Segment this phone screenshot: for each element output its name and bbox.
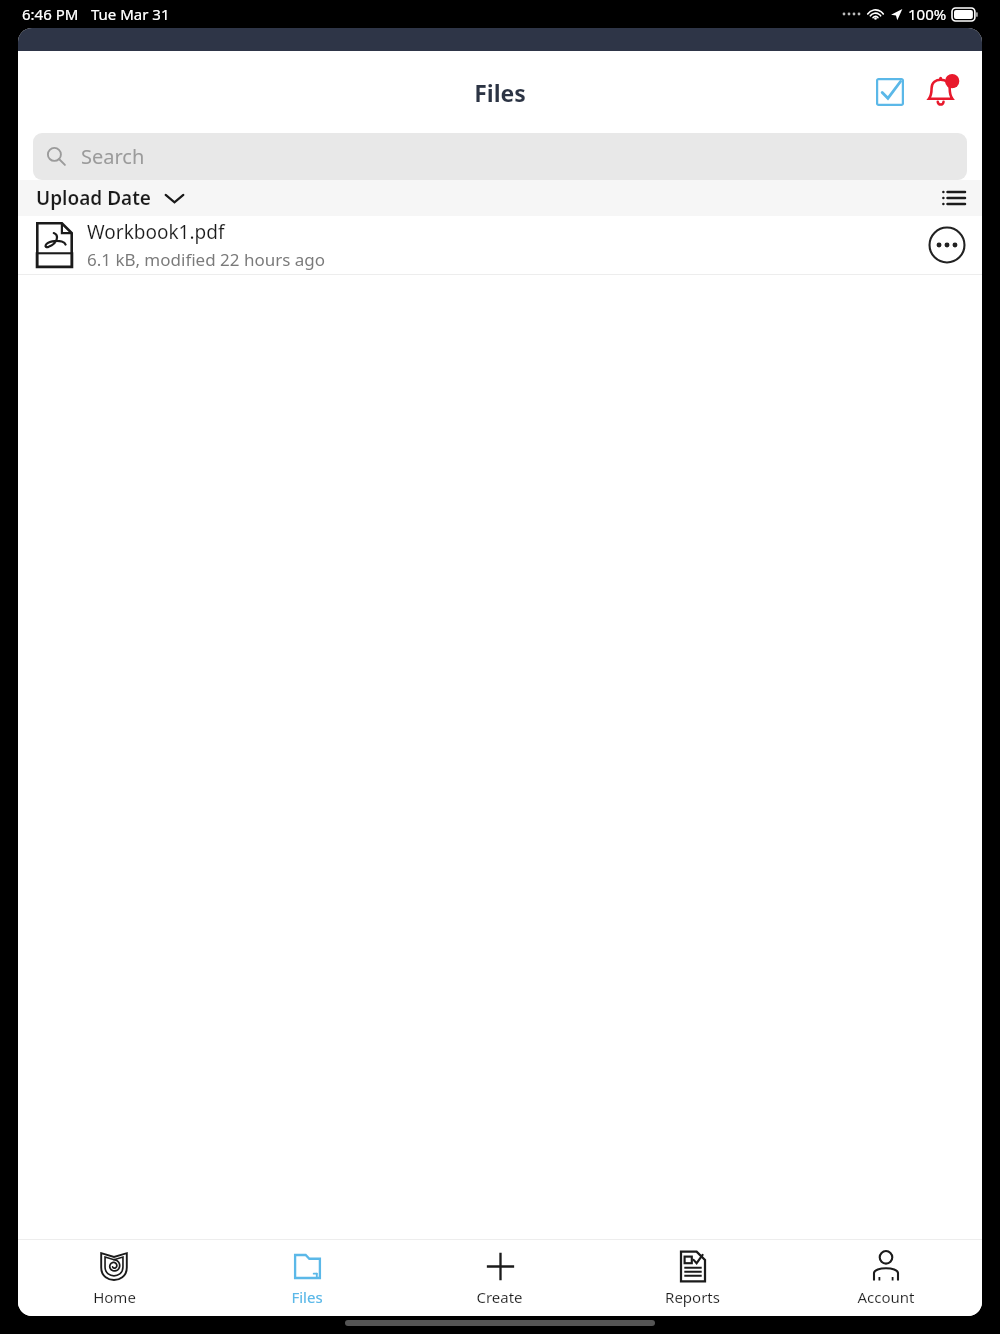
staticText: Tue Mar 31 <box>91 4 170 24</box>
button[interactable]: Select <box>866 68 914 116</box>
button[interactable]: Create <box>403 1245 596 1311</box>
staticText: Home <box>93 1287 136 1307</box>
button[interactable]: More options <box>923 221 971 269</box>
staticText: Upload Date <box>36 185 151 211</box>
staticText: Account <box>857 1287 915 1307</box>
button[interactable]: Search <box>33 133 967 180</box>
staticText: Create <box>476 1287 523 1307</box>
button[interactable]: Home <box>18 1245 210 1311</box>
staticText: Files <box>291 1287 323 1307</box>
staticText: Files <box>474 77 526 108</box>
button[interactable]: View options <box>931 180 975 216</box>
staticText: Workbook1.pdf <box>87 219 225 245</box>
button[interactable]: Files <box>210 1245 403 1311</box>
button[interactable]: Upload Date <box>18 185 195 211</box>
staticText: Search <box>81 143 145 170</box>
button[interactable]: Account <box>789 1245 982 1311</box>
staticText: Reports <box>665 1287 720 1307</box>
staticText: 6:46 PM <box>22 4 79 24</box>
staticText: 100% <box>908 4 947 24</box>
button[interactable]: Workbook1.pdf <box>18 216 982 274</box>
button[interactable]: Notifications <box>918 68 966 116</box>
staticText: 6.1 kB, modified 22 hours ago <box>87 248 326 271</box>
button[interactable]: Reports <box>596 1245 789 1311</box>
